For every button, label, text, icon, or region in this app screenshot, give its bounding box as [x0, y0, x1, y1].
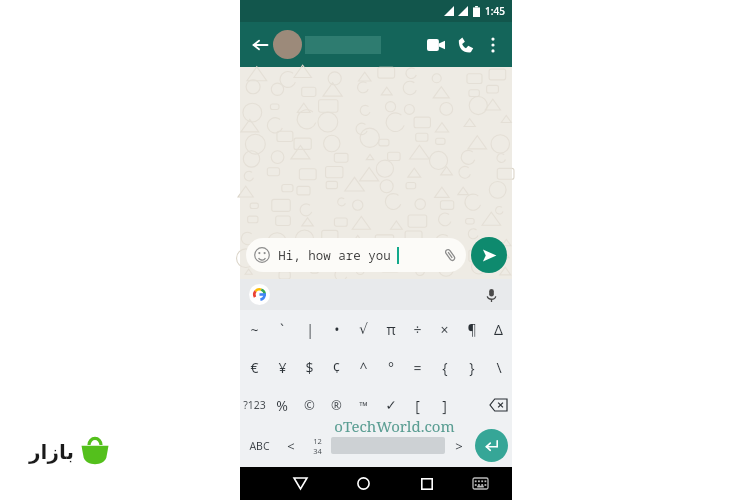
button[interactable]: 12 [304, 424, 331, 467]
button[interactable]: { [431, 348, 458, 386]
staticText: € [250, 358, 259, 377]
button[interactable]: | [296, 310, 323, 348]
staticText: Δ [494, 320, 503, 339]
staticText: } [469, 358, 475, 377]
button[interactable]: Send [471, 237, 507, 273]
button[interactable]: Voice input [480, 284, 502, 306]
button[interactable]: ¥ [268, 348, 296, 386]
button[interactable]: [ [404, 386, 431, 424]
button[interactable]: > [445, 424, 472, 467]
staticText: ¶ [467, 320, 477, 339]
button[interactable]: ✓ [377, 386, 404, 424]
button[interactable]: © [296, 386, 323, 424]
button[interactable]: € [240, 348, 268, 386]
staticText: 34 [313, 446, 322, 456]
staticText: بازار [29, 440, 74, 463]
staticText: Hi, how are you [278, 247, 391, 264]
staticText: { [442, 358, 448, 377]
button[interactable]: % [268, 386, 296, 424]
button[interactable]: ~ [240, 310, 268, 348]
button[interactable]: Home [345, 467, 382, 500]
staticText: | [306, 320, 314, 339]
button[interactable]: π [377, 310, 404, 348]
staticText: > [455, 437, 463, 455]
staticText: ® [331, 396, 342, 414]
button[interactable]: ¶ [458, 310, 485, 348]
button[interactable]: ` [268, 310, 296, 348]
button[interactable]: Google search [249, 284, 270, 305]
staticText: 12 [313, 436, 322, 446]
staticText: π [386, 320, 396, 339]
staticText: % [276, 396, 288, 415]
button[interactable]: √ [350, 310, 377, 348]
staticText: ¥ [278, 358, 287, 377]
button[interactable]: ?123 [240, 386, 268, 424]
button[interactable]: < [277, 424, 304, 467]
button[interactable]: ÷ [404, 310, 431, 348]
staticText: < [287, 437, 295, 455]
staticText: ✓ [385, 397, 397, 413]
button[interactable]: = [404, 348, 431, 386]
staticText: oTechWorld.com [334, 416, 455, 436]
staticText: ?123 [243, 398, 266, 412]
button[interactable]: $ [296, 348, 323, 386]
button[interactable]: } [458, 348, 485, 386]
staticText: ` [280, 320, 284, 339]
button[interactable]: Delete [485, 386, 512, 424]
staticText: ¢ [332, 358, 341, 377]
staticText: √ [359, 321, 368, 337]
button[interactable]: ABC [242, 424, 277, 467]
button[interactable]: Hi, how are you [246, 238, 466, 272]
button[interactable]: More options [481, 33, 505, 57]
button[interactable]: ® [323, 386, 350, 424]
button[interactable]: Enter [475, 429, 508, 462]
staticText: ABC [249, 439, 270, 453]
staticText: ] [442, 396, 447, 415]
button[interactable]: Δ [485, 310, 512, 348]
button[interactable]: ° [377, 348, 404, 386]
button[interactable]: ] [431, 386, 458, 424]
button[interactable]: × [431, 310, 458, 348]
button[interactable]: \ [485, 348, 512, 386]
staticText: ÷ [413, 320, 422, 339]
staticText: © [304, 396, 315, 414]
button[interactable]: Recent apps [408, 467, 445, 500]
button[interactable]: Back [247, 32, 273, 58]
staticText: \ [496, 358, 502, 377]
button[interactable]: Video call [421, 30, 451, 60]
staticText: [ [415, 396, 420, 415]
button[interactable] [273, 30, 421, 59]
button[interactable]: ¢ [323, 348, 350, 386]
button[interactable]: Bazaar [17, 423, 121, 480]
staticText: ~ [250, 320, 259, 339]
staticText: ° [388, 358, 394, 377]
staticText: = [413, 358, 422, 377]
button[interactable]: • [323, 310, 350, 348]
button[interactable]: ™ [350, 386, 377, 424]
button[interactable]: ^ [350, 348, 377, 386]
staticText: $ [305, 358, 314, 377]
staticText: 1:45 [485, 4, 505, 18]
button[interactable]: Voice call [451, 30, 481, 60]
staticText: × [440, 320, 449, 339]
button[interactable]: Switch keyboard [462, 467, 499, 500]
button[interactable]: Back [282, 467, 319, 500]
staticText: • [334, 320, 340, 339]
staticText: ™ [359, 398, 368, 413]
staticText: ^ [359, 358, 368, 377]
